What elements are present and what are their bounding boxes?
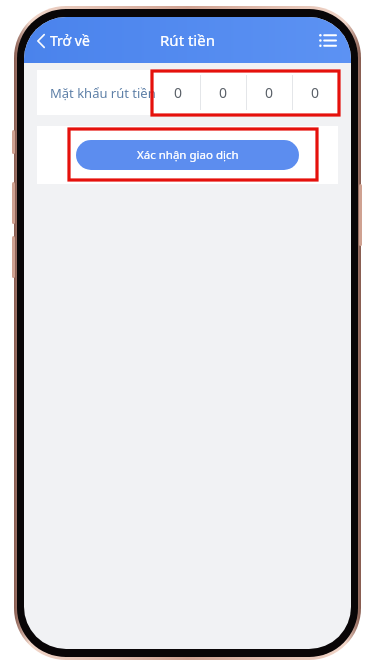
staticText: Trở về xyxy=(50,31,90,50)
button[interactable]: Menu xyxy=(313,28,342,53)
button[interactable]: Trở về xyxy=(24,24,100,57)
button[interactable]: Xác nhận giao dịch xyxy=(76,140,299,170)
staticText: 0 xyxy=(265,83,274,102)
staticText: Xác nhận giao dịch xyxy=(137,147,239,163)
staticText: 0 xyxy=(174,83,183,102)
button[interactable]: 0 xyxy=(201,75,246,110)
staticText: 0 xyxy=(219,83,228,102)
button[interactable]: 0 xyxy=(293,75,338,110)
button[interactable]: 0 xyxy=(247,75,292,110)
button[interactable]: 0 xyxy=(156,75,200,110)
staticText: 0 xyxy=(311,83,320,102)
staticText: Rút tiền xyxy=(160,30,215,50)
staticText: Mặt khẩu rút tiền xyxy=(50,84,156,102)
